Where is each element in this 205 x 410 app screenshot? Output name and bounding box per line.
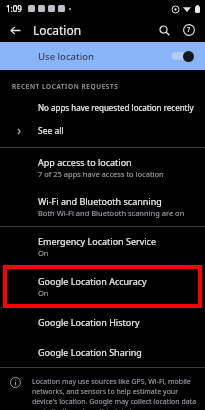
button[interactable]: See all [0, 123, 205, 139]
staticText: ? [187, 25, 191, 35]
staticText: App access to location [38, 156, 132, 168]
staticText: See all [38, 125, 64, 137]
staticText: Both Wi-Fi and Bluetooth scanning are on [38, 208, 185, 218]
button[interactable]: Search [154, 20, 174, 40]
staticText: No apps have requested location recently [38, 102, 194, 113]
button[interactable]: Wi-Fi and Bluetooth scanning [0, 187, 205, 226]
staticText: Wi-Fi and Bluetooth scanning [38, 195, 162, 207]
button[interactable]: Google Location History [0, 307, 205, 337]
button[interactable]: No apps have requested location recently [0, 101, 205, 114]
staticText: Google Location Accuracy [38, 275, 147, 287]
button[interactable]: App access to location [0, 148, 205, 187]
staticText: Location [33, 22, 82, 38]
button[interactable]: Google Location Accuracy [5, 267, 200, 306]
staticText: Google Location Sharing [38, 346, 142, 358]
button[interactable]: Google Location Sharing [0, 337, 205, 367]
button[interactable]: Emergency Location Service [0, 227, 205, 266]
staticText: 7 of 25 apps have access to location [38, 169, 164, 179]
staticText: On [38, 248, 49, 258]
staticText: Google Location History [38, 316, 140, 328]
button[interactable]: Help [179, 20, 199, 40]
staticText: Use location [38, 50, 172, 63]
staticText: RECENT LOCATION REQUESTS [12, 82, 205, 91]
staticText: Location may use sources like GPS, Wi-Fi… [32, 377, 197, 410]
staticText: Emergency Location Service [38, 235, 157, 247]
staticText: 1:09 [6, 3, 22, 14]
staticText: On [38, 288, 49, 298]
button[interactable]: Use location [0, 42, 205, 70]
button[interactable]: Back [5, 20, 25, 40]
